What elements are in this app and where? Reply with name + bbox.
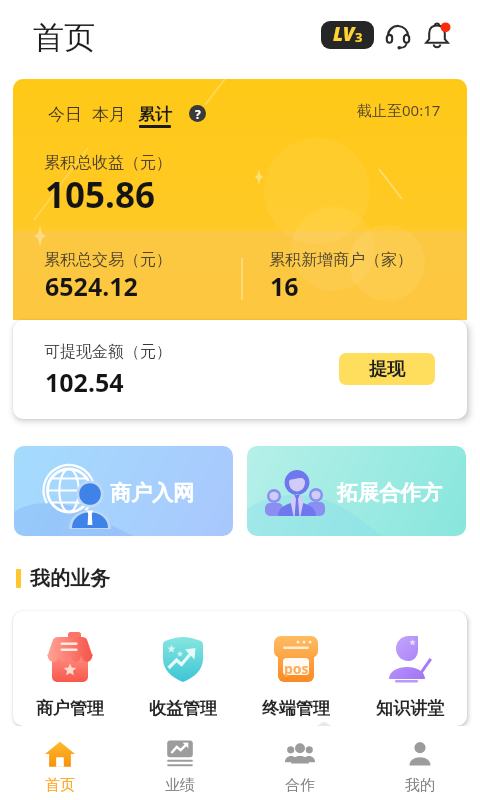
staticText: 本月 bbox=[92, 104, 126, 125]
staticText: 提现 bbox=[369, 358, 405, 381]
staticText: 商户入网 bbox=[110, 480, 194, 506]
button[interactable]: 今日 bbox=[48, 104, 82, 125]
button[interactable]: 拓展合作方 bbox=[247, 446, 466, 536]
staticText: pos bbox=[284, 659, 309, 678]
staticText: 合作 bbox=[285, 776, 315, 795]
staticText: 累积总收益（元） bbox=[44, 153, 172, 173]
staticText: 终端管理 bbox=[262, 698, 330, 719]
button[interactable]: 商户管理 bbox=[13, 611, 126, 726]
button[interactable]: 知识讲堂 bbox=[353, 611, 467, 726]
staticText: 我的业务 bbox=[30, 566, 110, 591]
button[interactable]: Notifications bbox=[422, 20, 452, 50]
staticText: 累计 bbox=[138, 104, 172, 125]
button[interactable]: 业绩 bbox=[120, 726, 240, 800]
staticText: 105.86 bbox=[45, 171, 155, 219]
button[interactable]: 商户入网 bbox=[14, 446, 233, 536]
staticText: ? bbox=[195, 106, 201, 122]
button[interactable]: Customer service bbox=[384, 22, 412, 50]
button[interactable]: 收益管理 bbox=[126, 611, 239, 726]
button[interactable]: Level 3 badge bbox=[321, 21, 374, 49]
staticText: 首页 bbox=[33, 18, 95, 57]
button[interactable]: 提现 bbox=[339, 353, 435, 385]
staticText: 6524.12 bbox=[45, 269, 138, 303]
button[interactable]: Help bbox=[189, 105, 206, 122]
staticText: 可提现金额（元） bbox=[44, 342, 172, 362]
staticText: YING JIAN ZHI JIA.COM bbox=[355, 758, 468, 772]
staticText: 商户管理 bbox=[36, 698, 104, 719]
button[interactable]: pos bbox=[239, 611, 353, 726]
button[interactable]: 我的 bbox=[360, 726, 480, 800]
staticText: 截止至00:17 bbox=[357, 100, 441, 120]
staticText: 3 bbox=[355, 28, 363, 46]
staticText: LV bbox=[333, 21, 355, 47]
staticText: 102.54 bbox=[45, 365, 124, 399]
staticText: 累积总交易（元） bbox=[44, 250, 172, 270]
staticText: 硬件之家 bbox=[354, 725, 466, 760]
staticText: 今日 bbox=[48, 104, 82, 125]
staticText: 我的 bbox=[405, 776, 435, 795]
staticText: 累积新增商户（家） bbox=[269, 250, 413, 270]
staticText: 知识讲堂 bbox=[376, 698, 444, 719]
button[interactable]: 累计 bbox=[138, 104, 172, 125]
button[interactable]: 本月 bbox=[92, 104, 126, 125]
staticText: 业绩 bbox=[165, 776, 195, 795]
button[interactable]: 合作 bbox=[240, 726, 360, 800]
button[interactable]: 首页 bbox=[0, 726, 120, 800]
staticText: 16 bbox=[270, 269, 299, 303]
staticText: 收益管理 bbox=[149, 698, 217, 719]
staticText: 拓展合作方 bbox=[337, 480, 442, 506]
staticText: 首页 bbox=[45, 776, 75, 795]
